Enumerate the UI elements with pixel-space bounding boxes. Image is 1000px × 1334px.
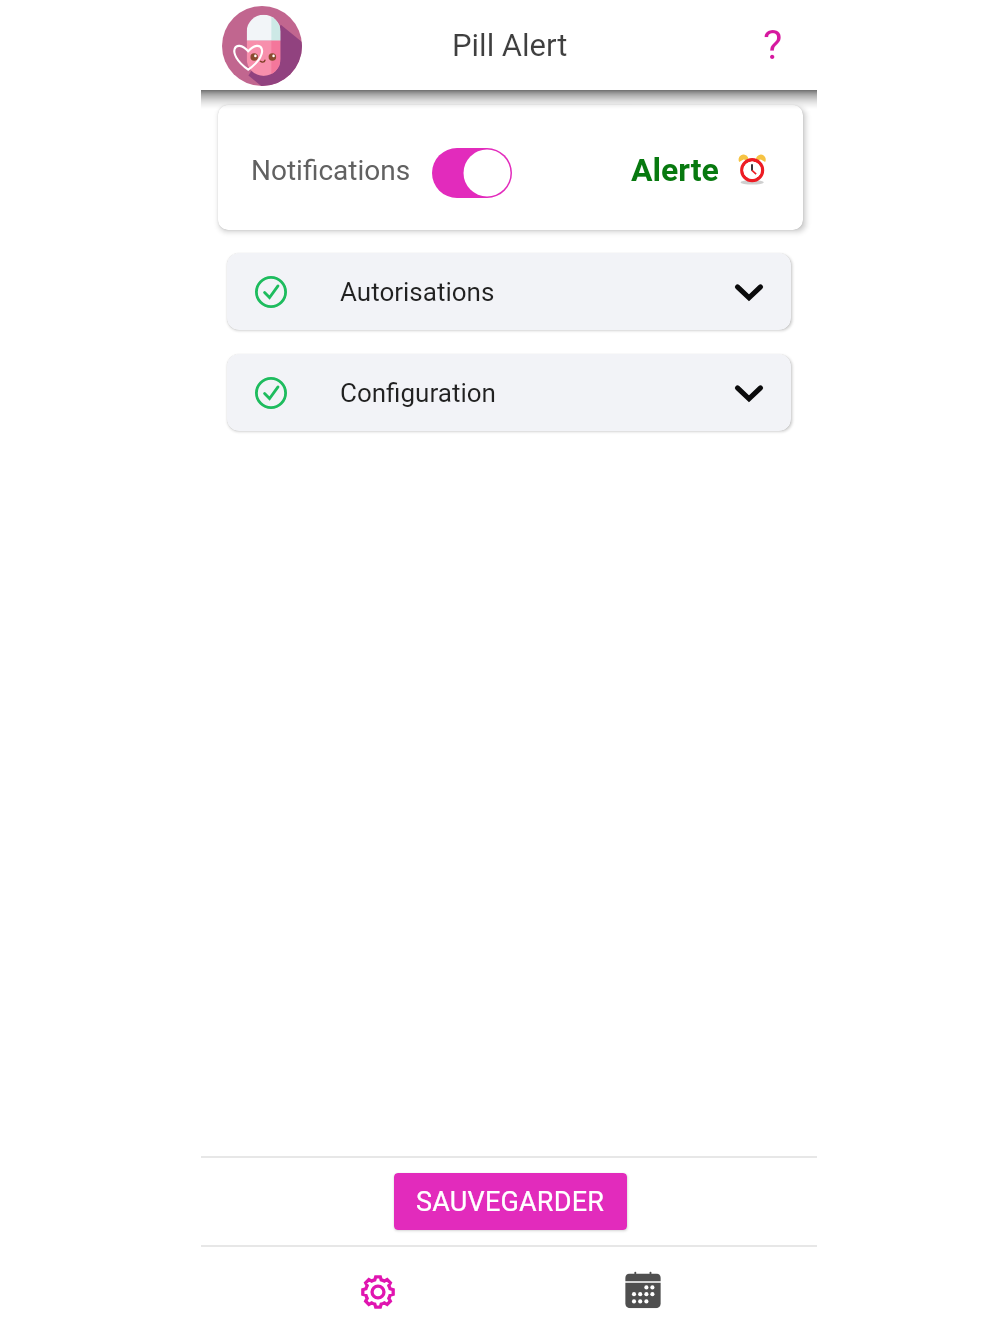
- staticText: Notifications: [251, 154, 411, 187]
- button[interactable]: Configuration: [227, 354, 791, 431]
- staticText: Autorisations: [340, 277, 495, 307]
- button[interactable]: Calendar: [599, 1247, 687, 1334]
- staticText: SAUVEGARDER: [416, 1186, 605, 1218]
- staticText: Alerte: [631, 151, 719, 189]
- button[interactable]: Notifications toggle: [432, 148, 512, 198]
- button[interactable]: Autorisations: [227, 253, 791, 330]
- staticText: Configuration: [340, 378, 496, 408]
- button[interactable]: Help: [738, 10, 808, 80]
- staticText: ?: [763, 21, 783, 69]
- button[interactable]: Settings: [334, 1247, 422, 1334]
- staticText: Pill Alert: [452, 27, 568, 63]
- button[interactable]: SAUVEGARDER: [394, 1173, 627, 1230]
